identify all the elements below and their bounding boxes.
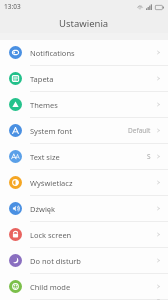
staticText: Dźwięk xyxy=(30,204,155,214)
staticText: Child mode xyxy=(30,282,155,292)
button[interactable]: Notifications xyxy=(0,40,168,65)
button[interactable]: Dźwięk xyxy=(0,196,168,221)
staticText: S xyxy=(147,152,151,161)
staticText: Default xyxy=(128,126,151,135)
button[interactable]: Do not disturb xyxy=(0,248,168,273)
button[interactable]: System font xyxy=(0,118,168,143)
button[interactable]: Child mode xyxy=(0,274,168,299)
staticText: Wyświetlacz xyxy=(30,178,155,188)
button[interactable]: Themes xyxy=(0,92,168,117)
button[interactable]: Tapeta xyxy=(0,66,168,91)
staticText: Tapeta xyxy=(30,74,155,84)
staticText: Text size xyxy=(30,152,147,162)
button[interactable]: Wyświetlacz xyxy=(0,170,168,195)
staticText: Notifications xyxy=(30,48,155,58)
button[interactable]: Lock screen xyxy=(0,222,168,247)
button[interactable]: Text size xyxy=(0,144,168,169)
staticText: Ustawienia xyxy=(59,17,109,30)
staticText: Lock screen xyxy=(30,230,155,240)
staticText: System font xyxy=(30,126,128,136)
staticText: Themes xyxy=(30,100,155,110)
staticText: Do not disturb xyxy=(30,256,155,266)
staticText: 13:03 xyxy=(4,2,21,11)
